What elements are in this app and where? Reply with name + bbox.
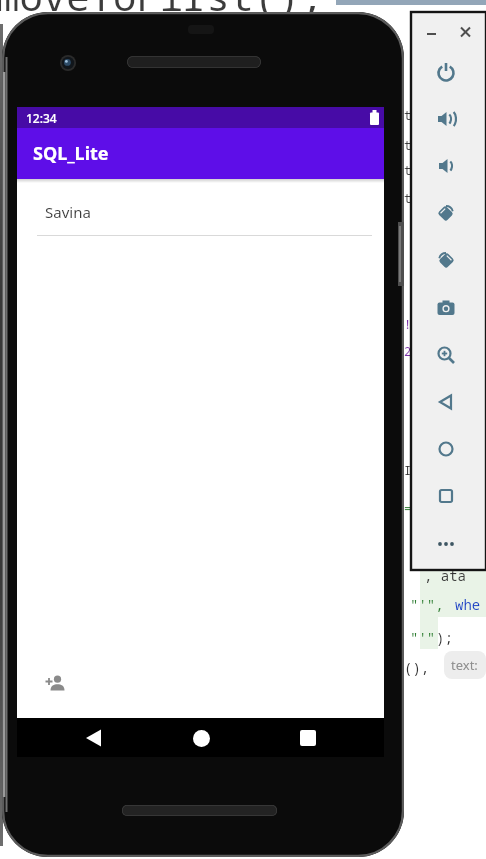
staticText: t [404,107,412,123]
button[interactable] [437,299,455,317]
button[interactable]: SQL_Lite [17,128,384,179]
button[interactable] [437,204,455,222]
staticText: = [404,500,412,516]
button[interactable] [193,730,210,747]
staticText: 12:34 [26,110,57,126]
button[interactable] [437,63,455,81]
button[interactable] [437,157,455,175]
button[interactable] [437,393,455,411]
staticText: ); [436,628,453,647]
staticText: (), [404,658,430,677]
button[interactable]: Savina [17,179,384,235]
button[interactable] [437,346,455,364]
staticText: "'" [410,628,436,647]
button[interactable] [45,674,65,692]
button[interactable] [437,487,455,505]
staticText: t [404,162,412,178]
staticText: text: [451,656,478,674]
staticText: 2 [404,343,412,359]
staticText: t [404,137,412,153]
button[interactable] [300,730,316,746]
button[interactable] [437,535,455,553]
staticText: "'", [410,595,444,614]
button[interactable] [437,440,455,458]
button[interactable] [437,251,455,269]
staticText: , ata [424,566,466,585]
button[interactable] [427,26,471,40]
staticText: Savina [45,202,91,222]
button[interactable] [86,729,102,747]
staticText: I [404,462,412,478]
staticText: whe [455,595,481,614]
staticText: ! [404,316,412,332]
staticText: moveToFirst(); [0,0,324,22]
button[interactable] [437,110,455,128]
staticText: SQL_Lite [33,141,109,166]
staticText: t [404,190,412,206]
